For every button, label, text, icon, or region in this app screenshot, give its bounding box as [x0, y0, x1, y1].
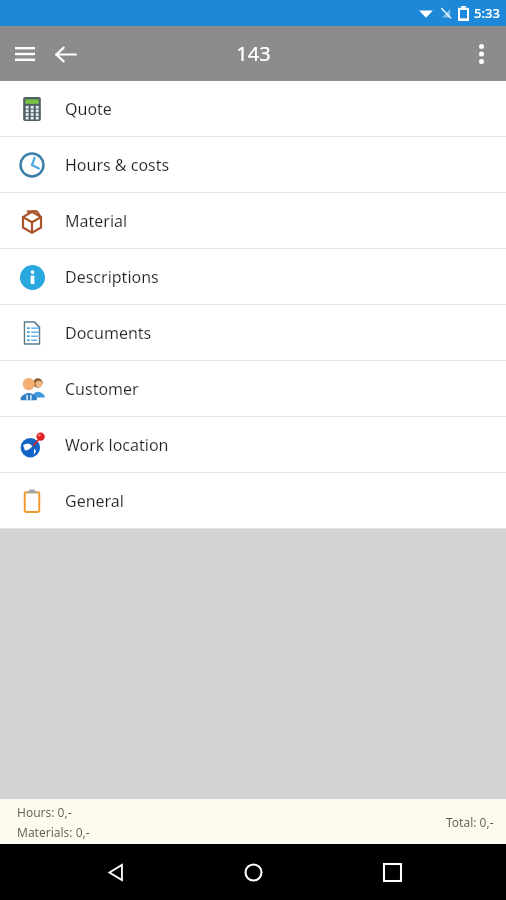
button[interactable]: Hours & costs: [0, 137, 506, 193]
button[interactable]: Recent apps: [368, 848, 416, 896]
button[interactable]: Navigation drawer: [6, 35, 44, 73]
staticText: Hours & costs: [65, 154, 170, 176]
button[interactable]: Back: [91, 848, 139, 896]
button[interactable]: Work location: [0, 417, 506, 473]
staticText: Documents: [65, 322, 152, 344]
staticText: Material: [65, 210, 128, 232]
staticText: Total: 0,-: [446, 814, 494, 830]
staticText: Customer: [65, 378, 139, 400]
staticText: 5:33: [474, 4, 500, 22]
button[interactable]: Home: [229, 848, 277, 896]
button[interactable]: Descriptions: [0, 249, 506, 305]
staticText: Materials: 0,-: [17, 824, 90, 840]
staticText: 143: [236, 40, 271, 67]
button[interactable]: Material: [0, 193, 506, 249]
button[interactable]: General: [0, 473, 506, 529]
staticText: Descriptions: [65, 266, 159, 288]
button[interactable]: Quote: [0, 81, 506, 137]
button[interactable]: Back: [44, 33, 86, 75]
button[interactable]: Customer: [0, 361, 506, 417]
staticText: Quote: [65, 98, 112, 120]
staticText: General: [65, 490, 124, 512]
button[interactable]: Documents: [0, 305, 506, 361]
button[interactable]: More options: [460, 33, 502, 75]
staticText: Work location: [65, 434, 169, 456]
staticText: Hours: 0,-: [17, 804, 72, 820]
